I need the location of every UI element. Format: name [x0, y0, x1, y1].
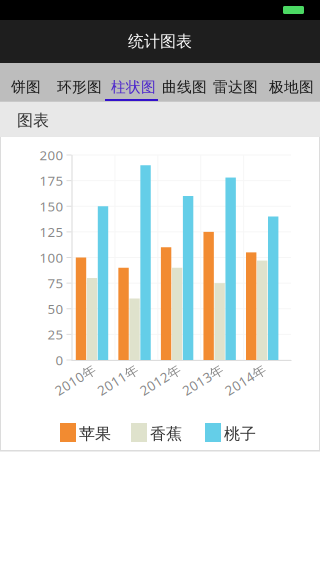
staticText: 2010年	[52, 371, 97, 389]
staticText: 环形图	[57, 78, 102, 96]
staticText: 200	[39, 146, 63, 164]
staticText: 2012年	[138, 371, 183, 389]
staticText: 图表	[17, 110, 49, 130]
staticText: 极地图	[269, 78, 314, 96]
staticText: 统计图表	[128, 32, 192, 51]
button[interactable]: 雷达图	[213, 68, 258, 106]
staticText: 50	[47, 300, 63, 318]
staticText: 苹果	[79, 424, 111, 444]
staticText: 175	[39, 172, 63, 189]
staticText: 2014年	[223, 371, 268, 389]
staticText: 100	[39, 249, 63, 266]
button[interactable]: 极地图	[269, 68, 314, 106]
staticText: 2013年	[180, 371, 225, 389]
button[interactable]: 饼图	[11, 68, 41, 106]
staticText: 0	[55, 351, 63, 369]
staticText: 曲线图	[162, 78, 207, 96]
staticText: 饼图	[11, 78, 41, 96]
staticText: 雷达图	[213, 78, 258, 96]
staticText: 柱状图	[111, 78, 156, 96]
button[interactable]: 柱状图	[111, 68, 156, 106]
staticText: 香蕉	[150, 424, 182, 444]
staticText: 2011年	[95, 371, 140, 389]
button[interactable]: 曲线图	[162, 68, 207, 106]
staticText: 150	[39, 197, 63, 215]
staticText: 25	[47, 325, 63, 343]
staticText: 75	[47, 274, 63, 292]
staticText: 125	[39, 223, 63, 241]
button[interactable]: 环形图	[57, 68, 102, 106]
staticText: 桃子	[224, 424, 256, 444]
